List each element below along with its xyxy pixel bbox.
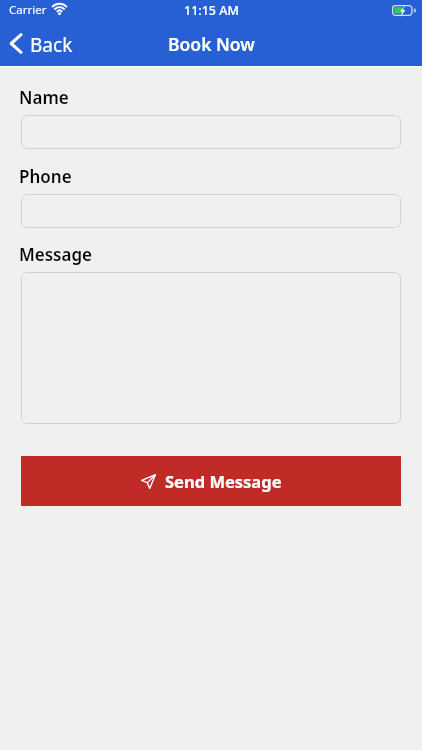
staticText: Book Now: [168, 32, 255, 56]
button[interactable]: [21, 115, 401, 149]
staticText: Back: [30, 32, 73, 58]
staticText: Message: [19, 243, 93, 266]
staticText: Send Message: [165, 470, 282, 492]
staticText: 11:15 AM: [184, 2, 239, 19]
other: Wi-Fi signal: [51, 4, 68, 16]
staticText: Carrier: [9, 2, 47, 18]
staticText: Phone: [19, 165, 72, 188]
other: Battery charging: [392, 5, 416, 16]
button[interactable]: [21, 272, 401, 424]
button[interactable]: Send Message: [21, 456, 401, 506]
button[interactable]: Back: [0, 26, 83, 64]
button[interactable]: [21, 194, 401, 228]
staticText: Name: [19, 86, 69, 109]
